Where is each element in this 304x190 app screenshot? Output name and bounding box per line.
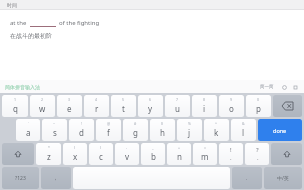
button[interactable]: 简体拼音输入法 (5, 84, 40, 90)
button[interactable]: 简一简 (260, 84, 274, 90)
staticText: 0 (257, 97, 260, 102)
button[interactable]: ^ (204, 119, 229, 141)
staticText: $ (161, 121, 164, 126)
button[interactable]: & (231, 119, 256, 141)
staticText: o (229, 103, 234, 114)
staticText: * (48, 145, 50, 150)
staticText: - (126, 145, 128, 150)
staticText: , (55, 175, 57, 182)
button[interactable]: 3 (57, 95, 82, 117)
button[interactable]: . (232, 167, 262, 189)
staticText: w (39, 103, 46, 114)
staticText: m (201, 151, 209, 162)
staticText: g (133, 127, 138, 138)
staticText: c (99, 151, 103, 162)
button[interactable]: Settings (280, 83, 288, 91)
button[interactable]: 1 (2, 95, 28, 117)
button[interactable]: done (258, 119, 302, 141)
staticText: # (134, 121, 137, 126)
button[interactable]: 8 (192, 95, 217, 117)
staticText: y (148, 103, 153, 114)
button[interactable]: 4 (84, 95, 109, 117)
staticText: . (230, 154, 232, 162)
staticText: = (204, 145, 207, 150)
staticText: 9 (230, 97, 233, 102)
staticText: k (214, 127, 219, 138)
staticText: 2 (41, 97, 44, 102)
staticText: . (257, 154, 259, 162)
staticText: s (53, 127, 57, 138)
staticText: 4 (95, 97, 98, 102)
button[interactable]: 6 (138, 95, 163, 117)
staticText: ! (230, 146, 232, 154)
button[interactable]: Shift (2, 143, 34, 165)
staticText: v (125, 151, 130, 162)
button[interactable]: Hide keyboard (291, 83, 299, 91)
staticText: ! (81, 121, 82, 126)
button[interactable]: Space (73, 167, 230, 189)
staticText: 3 (68, 97, 71, 102)
staticText: ) (100, 145, 102, 150)
staticText: n (177, 151, 182, 162)
staticText: p (256, 103, 261, 114)
button[interactable]: Shift right (271, 143, 302, 165)
staticText: u (175, 103, 180, 114)
staticText: 5 (122, 97, 125, 102)
staticText: z (47, 151, 51, 162)
staticText: h (160, 127, 165, 138)
button[interactable]: Backspace (273, 95, 302, 117)
button[interactable]: _ (141, 143, 165, 165)
staticText: r (95, 103, 99, 114)
button[interactable]: ?123 (2, 167, 39, 189)
staticText: & (242, 121, 245, 126)
staticText: ?123 (15, 175, 26, 182)
staticText: ~ (53, 121, 56, 126)
button[interactable]: $ (150, 119, 175, 141)
staticText: t (122, 103, 125, 114)
staticText: e (67, 103, 72, 114)
staticText: j (188, 127, 191, 138)
staticText: l (242, 127, 245, 138)
staticText: 中/英 (277, 175, 289, 182)
button[interactable]: # (123, 119, 148, 141)
staticText: b (151, 151, 156, 162)
button[interactable]: 0 (246, 95, 271, 117)
button[interactable]: ( (63, 143, 87, 165)
staticText: ? (256, 146, 259, 154)
staticText: 6 (149, 97, 152, 102)
staticText: d (79, 127, 84, 138)
button[interactable]: ) (89, 143, 113, 165)
staticText: a (26, 127, 31, 138)
button[interactable]: ! (69, 119, 94, 141)
button[interactable]: * (36, 143, 61, 165)
staticText: _ (152, 145, 154, 150)
button[interactable]: ` (16, 119, 40, 141)
staticText: done (273, 127, 287, 134)
button[interactable]: ? (245, 143, 269, 165)
button[interactable]: + (167, 143, 191, 165)
button[interactable]: 7 (165, 95, 190, 117)
button[interactable]: - (115, 143, 139, 165)
button[interactable]: % (177, 119, 202, 141)
staticText: @ (107, 121, 111, 126)
button[interactable]: 5 (111, 95, 136, 117)
staticText: i (203, 103, 206, 114)
button[interactable]: , (41, 167, 71, 189)
button[interactable]: @ (96, 119, 121, 141)
button[interactable]: 中/英 (264, 167, 302, 189)
staticText: at the (10, 19, 27, 27)
staticText: ( (74, 145, 76, 150)
button[interactable]: 2 (30, 95, 55, 117)
staticText: of the fighting (59, 19, 100, 27)
staticText: . (246, 175, 248, 182)
button[interactable]: ! (219, 143, 243, 165)
staticText: + (178, 145, 181, 150)
button[interactable]: = (193, 143, 217, 165)
staticText: ` (28, 121, 29, 126)
staticText: 在战斗的最初阶 (10, 32, 52, 40)
button[interactable]: ~ (42, 119, 67, 141)
staticText: 1 (14, 97, 17, 102)
staticText: ^ (215, 121, 218, 126)
button[interactable]: 9 (219, 95, 244, 117)
staticText: 7 (176, 97, 179, 102)
